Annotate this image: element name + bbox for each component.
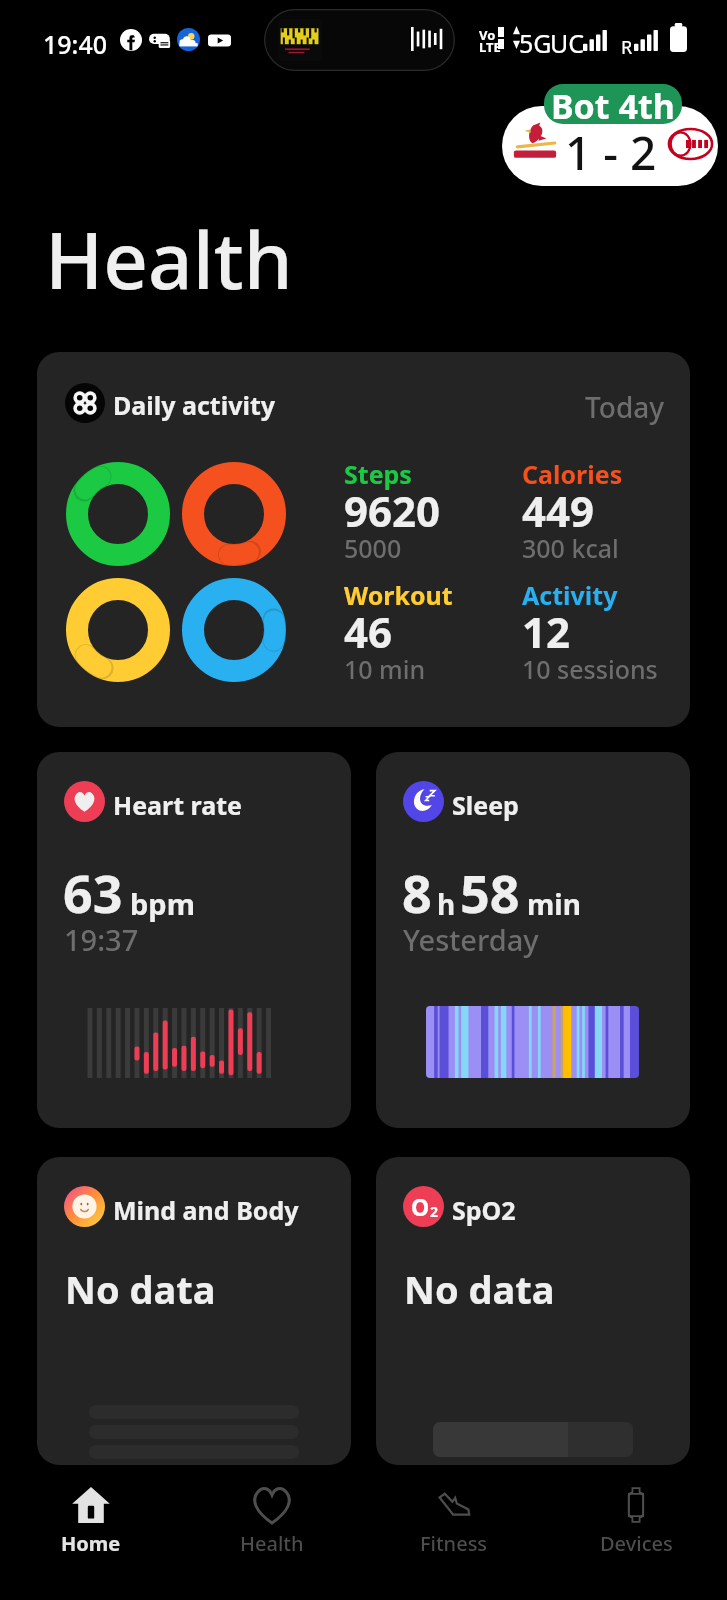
button[interactable]: Devices (545, 1465, 727, 1600)
staticText: No data (65, 1263, 216, 1315)
staticText: O (411, 1191, 430, 1222)
staticText: 5000 (344, 531, 402, 565)
staticText: SpO2 (452, 1193, 516, 1227)
button[interactable]: Sleep (376, 752, 690, 1128)
staticText: 58 (460, 857, 520, 928)
button[interactable]: Cardinals 1, Reds 2, Bot 4th (502, 106, 718, 186)
staticText: 63 (63, 857, 123, 928)
staticText: 300 kcal (522, 531, 619, 565)
staticText: min (527, 885, 581, 923)
staticText: 19:40 (43, 27, 108, 61)
staticText: R (621, 35, 633, 60)
button[interactable]: Heart rate (37, 752, 351, 1128)
staticText: Yesterday (403, 920, 539, 959)
staticText: Vo (479, 26, 496, 44)
staticText: Heart rate (113, 788, 242, 822)
staticText: Health (45, 206, 293, 312)
button[interactable]: Mind and Body (37, 1157, 351, 1465)
staticText: Workout (344, 578, 453, 612)
staticText: 19:37 (64, 920, 139, 959)
staticText: 8 (402, 857, 432, 928)
staticText: 449 (522, 482, 595, 539)
button[interactable]: O (376, 1157, 690, 1465)
button[interactable]: Fitness (363, 1465, 545, 1600)
staticText: Calories (522, 457, 623, 491)
staticText: LTE (479, 38, 501, 56)
button[interactable]: Home (0, 1465, 181, 1600)
staticText: Daily activity (113, 388, 276, 422)
staticText: h (437, 885, 456, 923)
staticText: Today (585, 388, 665, 426)
staticText: Steps (344, 457, 412, 491)
button[interactable]: Health (181, 1465, 363, 1600)
staticText: No data (404, 1263, 555, 1315)
staticText: Bot 4th (551, 84, 675, 123)
button[interactable]: Daily activity (37, 352, 690, 727)
staticText: Home (61, 1530, 121, 1557)
staticText: Health (240, 1530, 304, 1557)
staticText: 12 (522, 603, 571, 660)
staticText: 2 (430, 1202, 439, 1221)
button[interactable]: Now playing (264, 9, 455, 71)
staticText: 46 (344, 603, 393, 660)
staticText: 10 sessions (522, 652, 658, 686)
staticText: 10 min (344, 652, 426, 686)
staticText: Mind and Body (113, 1193, 299, 1227)
staticText: 1 - 2 (565, 121, 657, 184)
staticText: Activity (522, 578, 618, 612)
staticText: Fitness (420, 1530, 488, 1557)
staticText: bpm (130, 884, 195, 923)
staticText: 5G (519, 26, 552, 60)
staticText: 9620 (344, 482, 441, 539)
staticText: Devices (600, 1530, 673, 1557)
staticText: Sleep (452, 788, 519, 822)
staticText: UC (550, 26, 585, 60)
